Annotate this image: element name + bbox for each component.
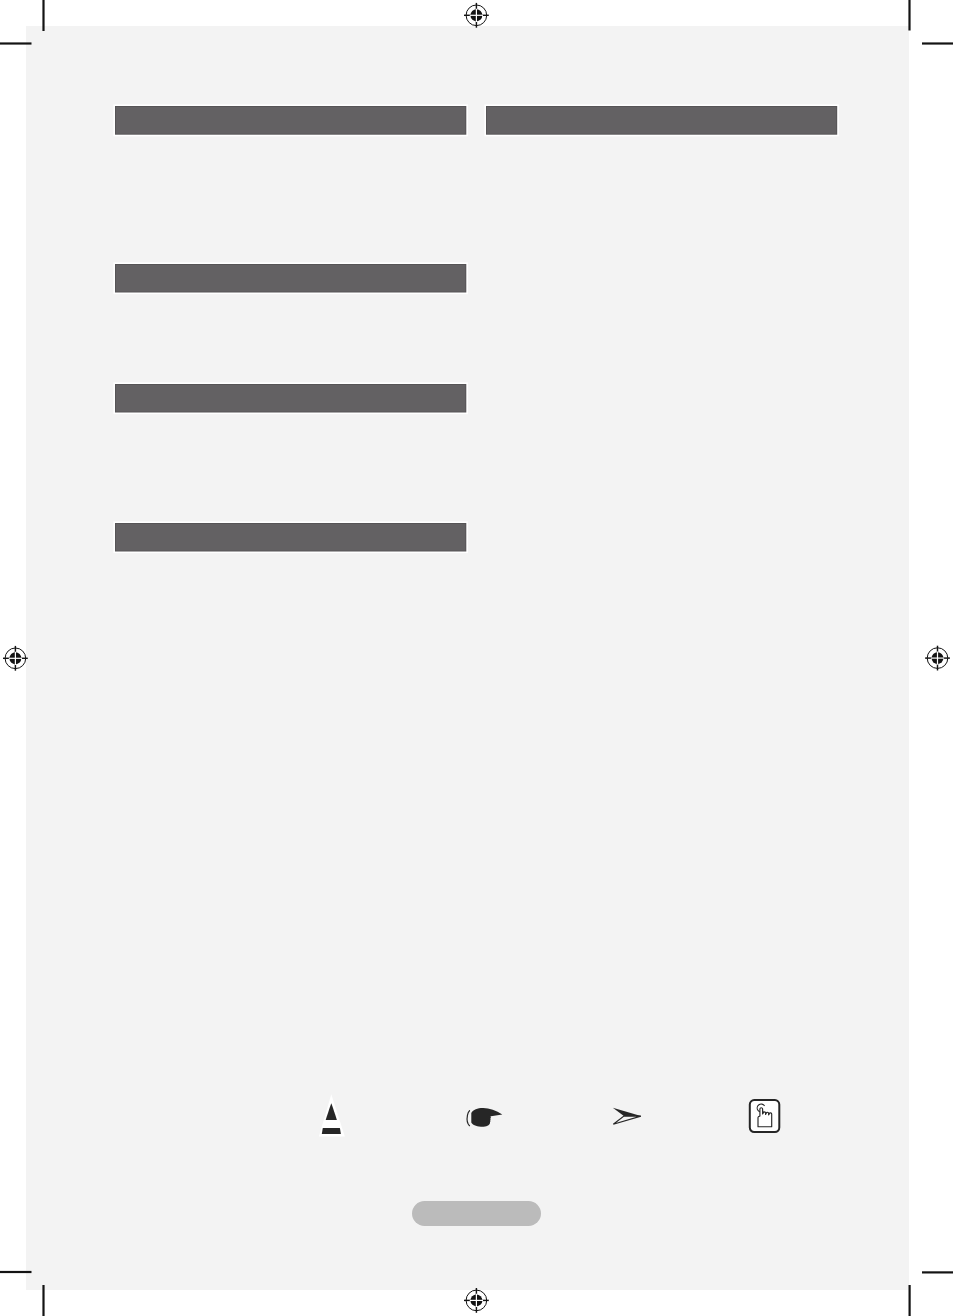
button[interactable] — [111, 260, 470, 297]
button[interactable] — [482, 102, 841, 139]
button[interactable]: Send — [608, 1104, 646, 1130]
button[interactable] — [111, 102, 470, 139]
button[interactable] — [412, 1201, 541, 1226]
button[interactable] — [111, 519, 470, 556]
button[interactable]: Pointing hand — [463, 1104, 507, 1132]
button[interactable]: Warning — [314, 1090, 350, 1142]
button[interactable] — [111, 380, 470, 417]
button[interactable]: Tap — [746, 1096, 784, 1136]
